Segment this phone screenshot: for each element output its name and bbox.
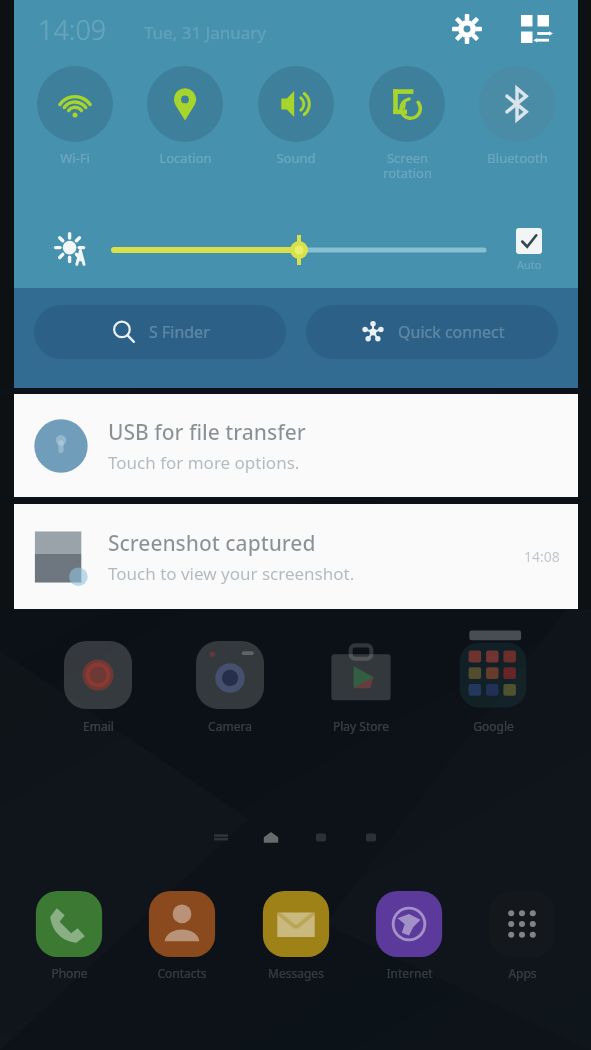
staticText: 14:08 bbox=[524, 547, 560, 566]
staticText: Internet bbox=[386, 965, 433, 981]
button[interactable]: USB for file transfer bbox=[14, 394, 578, 497]
staticText: Phone bbox=[51, 965, 88, 981]
staticText: Screen rotation bbox=[383, 149, 432, 182]
staticText: Touch for more options. bbox=[108, 451, 300, 474]
staticText: 14:09 bbox=[38, 11, 107, 48]
button[interactable]: Camera bbox=[182, 638, 278, 734]
staticText: S Finder bbox=[149, 321, 210, 343]
button[interactable]: Quick connect bbox=[306, 305, 558, 359]
staticText: Tue, 31 January bbox=[144, 21, 266, 44]
button[interactable]: Google bbox=[445, 638, 541, 734]
button[interactable]: Wi-Fi bbox=[25, 66, 125, 167]
button[interactable]: Messages bbox=[244, 888, 348, 981]
staticText: Email bbox=[83, 718, 114, 734]
staticText: Bluetooth bbox=[487, 149, 548, 167]
staticText: USB for file transfer bbox=[108, 418, 306, 447]
staticText: Sound bbox=[276, 149, 316, 167]
button[interactable]: Edit quick settings bbox=[514, 8, 556, 50]
button[interactable] bbox=[114, 230, 484, 270]
button[interactable]: Location bbox=[135, 66, 235, 167]
button[interactable]: Sound bbox=[246, 66, 346, 167]
staticText: Contacts bbox=[157, 965, 207, 981]
staticText: Touch to view your screenshot. bbox=[108, 562, 355, 585]
button[interactable]: Phone bbox=[17, 888, 121, 981]
button[interactable]: Contacts bbox=[130, 888, 234, 981]
staticText: Location bbox=[159, 149, 212, 167]
staticText: Play Store bbox=[333, 718, 389, 734]
staticText: Camera bbox=[208, 718, 252, 734]
button[interactable]: Email bbox=[50, 638, 146, 734]
button[interactable]: Bluetooth bbox=[467, 66, 567, 167]
staticText: Quick connect bbox=[398, 321, 505, 343]
staticText: Screenshot captured bbox=[108, 529, 316, 558]
staticText: Google bbox=[473, 718, 514, 734]
staticText: Auto bbox=[517, 257, 542, 272]
button[interactable]: Apps bbox=[470, 888, 574, 981]
staticText: Messages bbox=[268, 965, 324, 981]
staticText: Apps bbox=[508, 965, 537, 981]
button[interactable]: Screen rotation bbox=[357, 66, 457, 182]
button[interactable]: Auto bbox=[498, 228, 560, 272]
button[interactable]: S Finder bbox=[34, 305, 286, 359]
button[interactable]: Screenshot captured bbox=[14, 504, 578, 609]
button[interactable]: Play Store bbox=[313, 638, 409, 734]
staticText: Wi-Fi bbox=[60, 149, 90, 167]
button[interactable]: Settings bbox=[446, 8, 488, 50]
button[interactable]: Internet bbox=[357, 888, 461, 981]
